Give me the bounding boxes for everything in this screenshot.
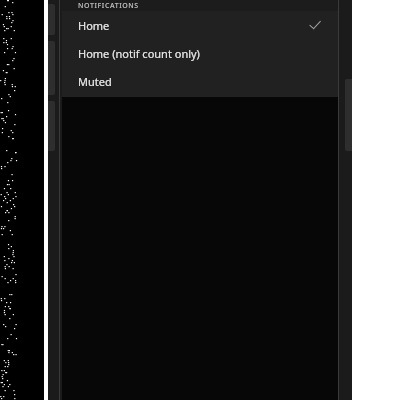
staticText: NOTIFICATIONS [78,1,139,11]
staticText: Home [78,18,110,33]
staticText: Home (notif count only) [78,46,200,61]
button[interactable]: Muted [62,67,338,95]
staticText: Muted [78,74,112,89]
button[interactable]: Home [62,11,338,39]
other: Selected [308,18,322,32]
button[interactable]: Home (notif count only) [62,39,338,67]
